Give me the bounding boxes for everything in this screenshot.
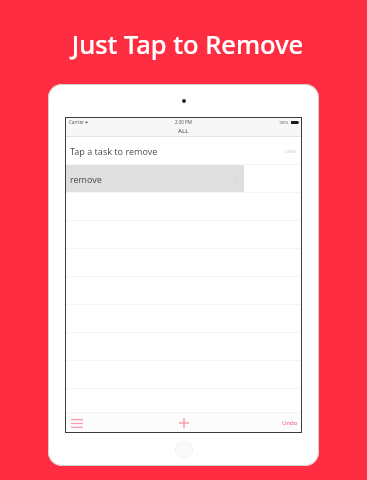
staticText: ALL [178,127,189,135]
button[interactable]: Add task [177,416,191,430]
button[interactable]: clear [66,137,301,165]
button[interactable]: Lists [71,417,83,429]
staticText: Just Tap to Remove [4,27,367,62]
staticText: Tap a task to remove [70,145,158,157]
button[interactable]: Undo [278,413,301,432]
staticText: clear [285,148,297,155]
staticText: remove [70,173,102,185]
staticText: 2:30 PM [175,119,192,125]
button[interactable]: remove [66,165,301,193]
staticText: 100% [279,120,289,125]
staticText: Undo [282,419,298,427]
staticText: Carrier [69,119,84,125]
